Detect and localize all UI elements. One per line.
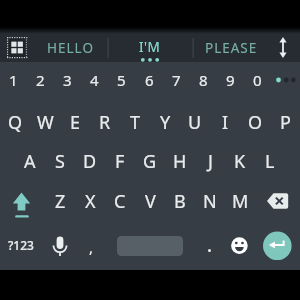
staticText: A: [24, 149, 36, 174]
staticText: 3: [63, 70, 72, 90]
staticText: 0: [253, 70, 262, 90]
staticText: V: [145, 189, 156, 214]
staticText: 1: [9, 70, 18, 90]
staticText: HELLO: [47, 39, 94, 57]
staticText: L: [265, 149, 275, 174]
staticText: O: [248, 110, 263, 135]
staticText: ?123: [8, 237, 34, 253]
staticText: T: [130, 110, 141, 135]
staticText: I'M: [139, 38, 161, 56]
staticText: F: [115, 149, 125, 174]
staticText: 6: [145, 70, 154, 90]
staticText: J: [208, 149, 213, 174]
staticText: I: [222, 110, 229, 135]
staticText: 5: [117, 70, 126, 90]
staticText: Z: [55, 189, 66, 214]
staticText: X: [85, 189, 96, 214]
staticText: W: [37, 110, 54, 135]
staticText: D: [83, 149, 97, 174]
staticText: E: [70, 110, 81, 135]
staticText: M: [232, 189, 249, 214]
staticText: ,: [89, 237, 94, 257]
staticText: P: [280, 110, 291, 135]
staticText: Q: [8, 110, 23, 135]
staticText: G: [143, 149, 157, 174]
staticText: 4: [90, 70, 99, 90]
staticText: PLEASE: [205, 39, 258, 57]
staticText: S: [55, 149, 65, 174]
staticText: U: [188, 110, 202, 135]
staticText: H: [173, 149, 187, 174]
staticText: 7: [172, 70, 181, 90]
staticText: 9: [226, 70, 235, 90]
staticText: Y: [160, 110, 171, 135]
staticText: C: [114, 189, 126, 214]
staticText: R: [99, 110, 111, 135]
staticText: 8: [199, 70, 208, 90]
staticText: K: [234, 149, 246, 174]
staticText: 2: [36, 70, 45, 90]
staticText: N: [203, 189, 217, 214]
staticText: B: [174, 189, 186, 214]
